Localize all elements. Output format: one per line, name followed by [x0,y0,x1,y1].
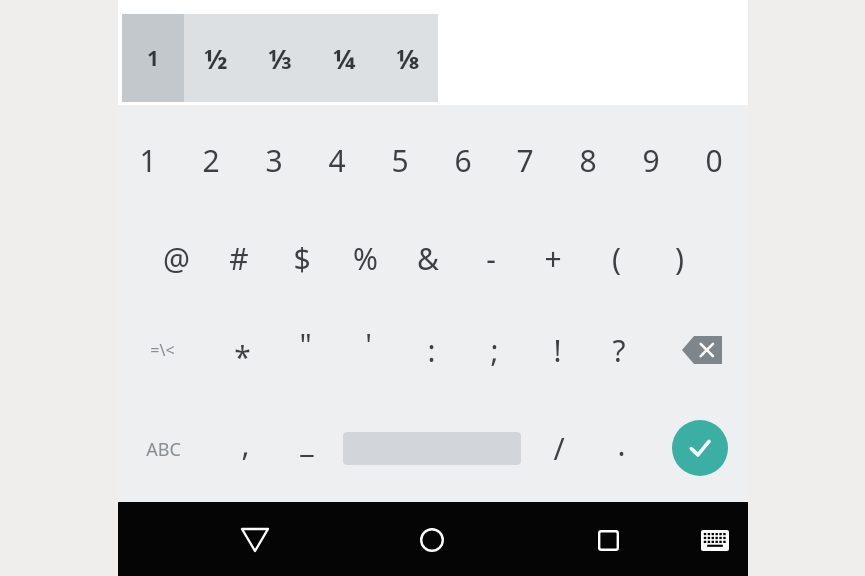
button[interactable]: Enter [672,420,728,476]
button[interactable]: =\< [125,307,199,393]
button[interactable]: ⅓ [248,14,312,102]
staticText: $ [293,238,311,279]
staticText: ½ [204,40,228,77]
button[interactable]: / [528,405,590,491]
button[interactable]: - [460,215,522,301]
button[interactable]: 2 [180,117,242,203]
button[interactable]: 3 [243,117,305,203]
staticText: & [417,238,439,279]
button[interactable]: 1 [117,117,179,203]
staticText: 8 [579,140,597,181]
staticText: : [427,330,436,371]
button[interactable]: _ [276,397,338,483]
button[interactable]: Change keyboard [687,512,743,568]
staticText: ¼ [333,40,356,77]
button[interactable]: & [397,215,459,301]
staticText: 2 [202,140,220,181]
button[interactable]: ¼ [312,14,376,102]
button[interactable]: 1 [122,14,184,102]
staticText: . [617,424,626,465]
staticText: 3 [265,140,283,181]
staticText: ' [365,324,372,365]
button[interactable]: 4 [306,117,368,203]
button[interactable]: * [211,313,273,399]
staticText: * [234,336,251,377]
staticText: 5 [391,140,409,181]
button[interactable]: ; [463,307,525,393]
staticText: 9 [642,140,660,181]
staticText: _ [300,420,314,461]
button[interactable]: 7 [494,117,556,203]
button[interactable]: " [274,301,336,387]
staticText: ⅛ [396,40,420,77]
button[interactable]: Home [402,510,462,570]
button[interactable]: 0 [683,117,745,203]
button[interactable]: 5 [369,117,431,203]
staticText: / [553,428,565,469]
button[interactable]: Backspace [671,320,733,380]
button[interactable]: . [590,401,652,487]
button[interactable]: , [214,401,276,487]
staticText: " [299,324,312,365]
button[interactable]: ' [337,301,399,387]
button[interactable]: ( [585,215,647,301]
staticText: ⅓ [268,40,292,77]
staticText: 6 [454,140,472,181]
staticText: @ [163,238,190,279]
button[interactable]: 9 [620,117,682,203]
staticText: ) [675,238,684,279]
button[interactable]: ABC [123,406,203,492]
button[interactable]: ½ [184,14,248,102]
staticText: =\< [150,339,175,361]
button[interactable]: ! [526,307,588,393]
staticText: + [544,238,562,279]
staticText: - [486,238,496,279]
button[interactable]: % [334,215,396,301]
staticText: 1 [139,140,157,181]
button[interactable]: 6 [432,117,494,203]
staticText: 7 [516,140,534,181]
button[interactable]: ) [648,215,710,301]
staticText: % [353,238,378,279]
button[interactable]: + [522,215,584,301]
staticText: ! [553,330,562,371]
button[interactable]: # [208,215,270,301]
staticText: ? [612,330,626,371]
staticText: ( [612,238,621,279]
staticText: , [241,424,250,465]
button[interactable]: Recents [578,510,638,570]
staticText: 0 [705,140,723,181]
staticText: ; [490,330,499,371]
button[interactable]: ⅛ [376,14,440,102]
button[interactable]: @ [145,215,207,301]
button[interactable]: : [400,307,462,393]
button[interactable]: $ [271,215,333,301]
staticText: 4 [328,140,346,181]
button[interactable]: Back [225,510,285,570]
staticText: 1 [147,44,160,73]
button[interactable]: 8 [557,117,619,203]
button[interactable]: ? [588,307,650,393]
staticText: # [229,238,249,279]
staticText: ABC [146,437,181,462]
